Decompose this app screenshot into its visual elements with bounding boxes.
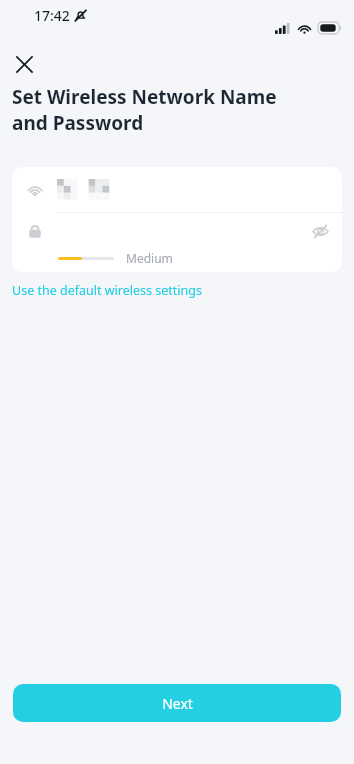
staticText: 17:42 bbox=[34, 6, 70, 25]
button[interactable]: Show password bbox=[304, 215, 336, 247]
button[interactable] bbox=[12, 167, 342, 212]
button[interactable]: Use the default wireless settings bbox=[12, 282, 202, 299]
staticText: Set Wireless Network Name and Password bbox=[12, 84, 342, 136]
staticText: Medium bbox=[126, 250, 173, 266]
button[interactable]: Close bbox=[4, 44, 44, 84]
button[interactable]: Show password bbox=[12, 213, 342, 249]
button[interactable]: Next bbox=[13, 684, 341, 722]
staticText: Use the default wireless settings bbox=[12, 282, 202, 299]
staticText: Next bbox=[162, 694, 193, 713]
